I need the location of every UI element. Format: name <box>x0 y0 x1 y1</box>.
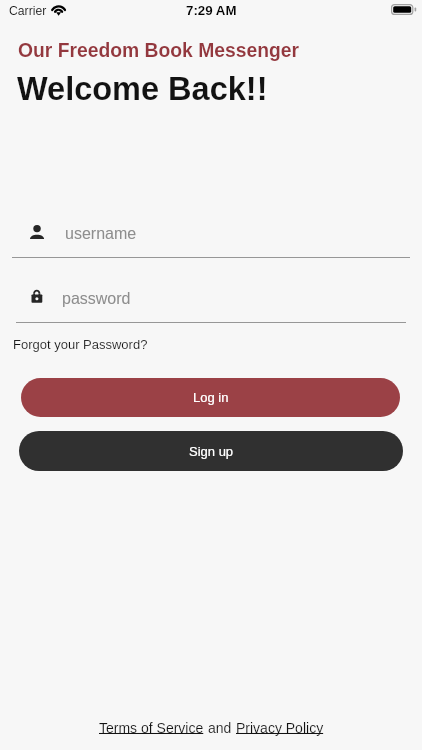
button[interactable]: Forgot your Password? <box>13 334 148 355</box>
button[interactable]: Terms of Service <box>99 716 204 740</box>
staticText: Our Freedom Book Messenger <box>18 40 299 62</box>
staticText: Privacy Policy <box>236 720 324 736</box>
staticText: Log in <box>193 390 229 405</box>
button[interactable]: Privacy Policy <box>236 716 324 740</box>
staticText: Welcome Back!! <box>17 71 268 107</box>
button[interactable]: username <box>12 210 410 258</box>
button[interactable]: Log in <box>21 378 400 417</box>
staticText: Sign up <box>189 444 234 459</box>
staticText: and <box>204 720 236 736</box>
staticText: Terms of Service <box>99 720 204 736</box>
button[interactable]: password <box>16 275 406 323</box>
staticText: 7:29 AM <box>186 3 237 18</box>
staticText: password <box>62 290 131 308</box>
staticText: Forgot your Password? <box>13 337 148 352</box>
staticText: username <box>65 225 137 243</box>
staticText: Carrier <box>9 4 47 18</box>
button[interactable]: Sign up <box>19 431 403 471</box>
